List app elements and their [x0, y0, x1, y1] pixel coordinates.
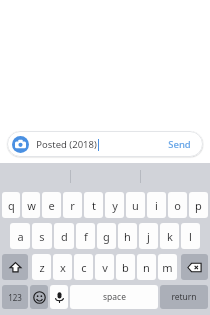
staticText: f: [84, 229, 88, 244]
staticText: Send: [168, 138, 191, 151]
button[interactable]: d: [54, 223, 74, 249]
button[interactable]: o: [168, 192, 187, 218]
button[interactable]: Send: [160, 134, 199, 155]
button[interactable]: c: [74, 254, 93, 280]
staticText: n: [143, 260, 150, 275]
staticText: g: [103, 229, 110, 244]
staticText: h: [124, 229, 131, 244]
button[interactable]: Camera: [12, 136, 29, 153]
button[interactable]: Camera: [7, 131, 203, 157]
staticText: m: [162, 260, 173, 275]
staticText: a: [17, 229, 24, 244]
button[interactable]: r: [63, 192, 82, 218]
staticText: w: [27, 198, 36, 213]
staticText: v: [102, 260, 108, 275]
staticText: l: [189, 229, 192, 244]
staticText: Posted (2018): [36, 138, 97, 151]
staticText: j: [147, 229, 150, 244]
button[interactable]: x: [53, 254, 72, 280]
staticText: e: [48, 198, 55, 213]
button[interactable]: u: [126, 192, 145, 218]
button[interactable]: Dictation: [50, 285, 68, 309]
staticText: return: [171, 291, 197, 303]
staticText: y: [112, 198, 118, 213]
button[interactable]: g: [97, 223, 116, 249]
button[interactable]: a: [10, 223, 30, 249]
button[interactable]: Emoji: [30, 285, 48, 309]
button[interactable]: b: [116, 254, 135, 280]
staticText: z: [39, 260, 45, 275]
button[interactable]: j: [139, 223, 158, 249]
staticText: s: [39, 229, 45, 244]
button[interactable]: l: [181, 223, 200, 249]
button[interactable]: i: [147, 192, 166, 218]
button[interactable]: z: [32, 254, 51, 280]
button[interactable]: return: [160, 285, 208, 309]
staticText: 123: [8, 292, 22, 303]
staticText: o: [174, 198, 181, 213]
button[interactable]: 123: [2, 285, 28, 309]
staticText: u: [132, 198, 139, 213]
staticText: q: [8, 198, 15, 213]
button[interactable]: e: [42, 192, 61, 218]
button[interactable]: Backspace: [181, 254, 208, 280]
button[interactable]: y: [105, 192, 124, 218]
button[interactable]: t: [84, 192, 103, 218]
staticText: c: [81, 260, 87, 275]
button[interactable]: v: [95, 254, 114, 280]
button[interactable]: s: [32, 223, 52, 249]
button[interactable]: h: [118, 223, 137, 249]
staticText: p: [195, 198, 202, 213]
staticText: d: [61, 229, 68, 244]
button[interactable]: n: [137, 254, 156, 280]
staticText: space: [103, 291, 126, 303]
button[interactable]: space: [70, 285, 158, 309]
button[interactable]: f: [76, 223, 95, 249]
staticText: b: [122, 260, 129, 275]
staticText: x: [60, 260, 66, 275]
button[interactable]: w: [22, 192, 40, 218]
button[interactable]: p: [189, 192, 208, 218]
staticText: k: [167, 229, 173, 244]
staticText: t: [92, 198, 96, 213]
staticText: r: [70, 198, 75, 213]
button[interactable]: Shift: [2, 254, 28, 280]
button[interactable]: m: [158, 254, 177, 280]
staticText: i: [155, 198, 158, 213]
button[interactable]: k: [160, 223, 179, 249]
button[interactable]: q: [2, 192, 20, 218]
